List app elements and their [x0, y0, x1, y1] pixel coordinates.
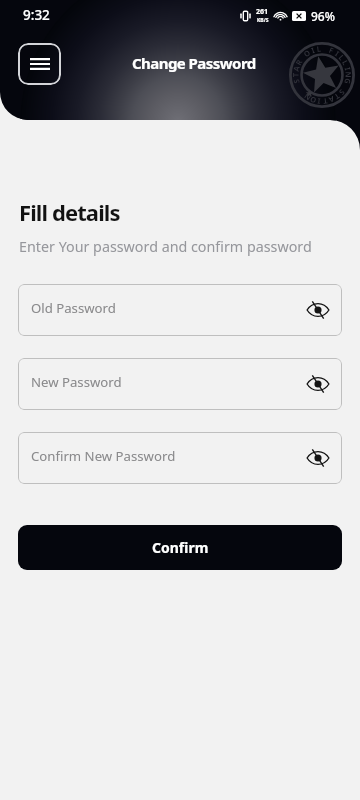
- button[interactable]: Toggle password visibility: [303, 295, 333, 325]
- button[interactable]: Old Password: [18, 284, 342, 336]
- staticText: New Password: [31, 373, 122, 391]
- button[interactable]: Confirm: [18, 525, 342, 570]
- button[interactable]: Toggle password visibility: [303, 443, 333, 473]
- staticText: Confirm New Password: [31, 447, 176, 465]
- staticText: Change Password: [132, 53, 256, 73]
- button[interactable]: Menu: [18, 43, 61, 85]
- staticText: 96%: [311, 8, 335, 24]
- button[interactable]: New Password: [18, 358, 342, 410]
- staticText: KB/S: [257, 17, 269, 24]
- staticText: 9:32: [23, 6, 50, 24]
- staticText: 261: [256, 7, 269, 17]
- button[interactable]: Confirm New Password: [18, 432, 342, 484]
- staticText: Fill details: [19, 197, 120, 227]
- staticText: Old Password: [31, 299, 116, 317]
- staticText: Confirm: [152, 538, 209, 557]
- staticText: Enter Your password and confirm password: [19, 237, 312, 256]
- button[interactable]: Toggle password visibility: [303, 369, 333, 399]
